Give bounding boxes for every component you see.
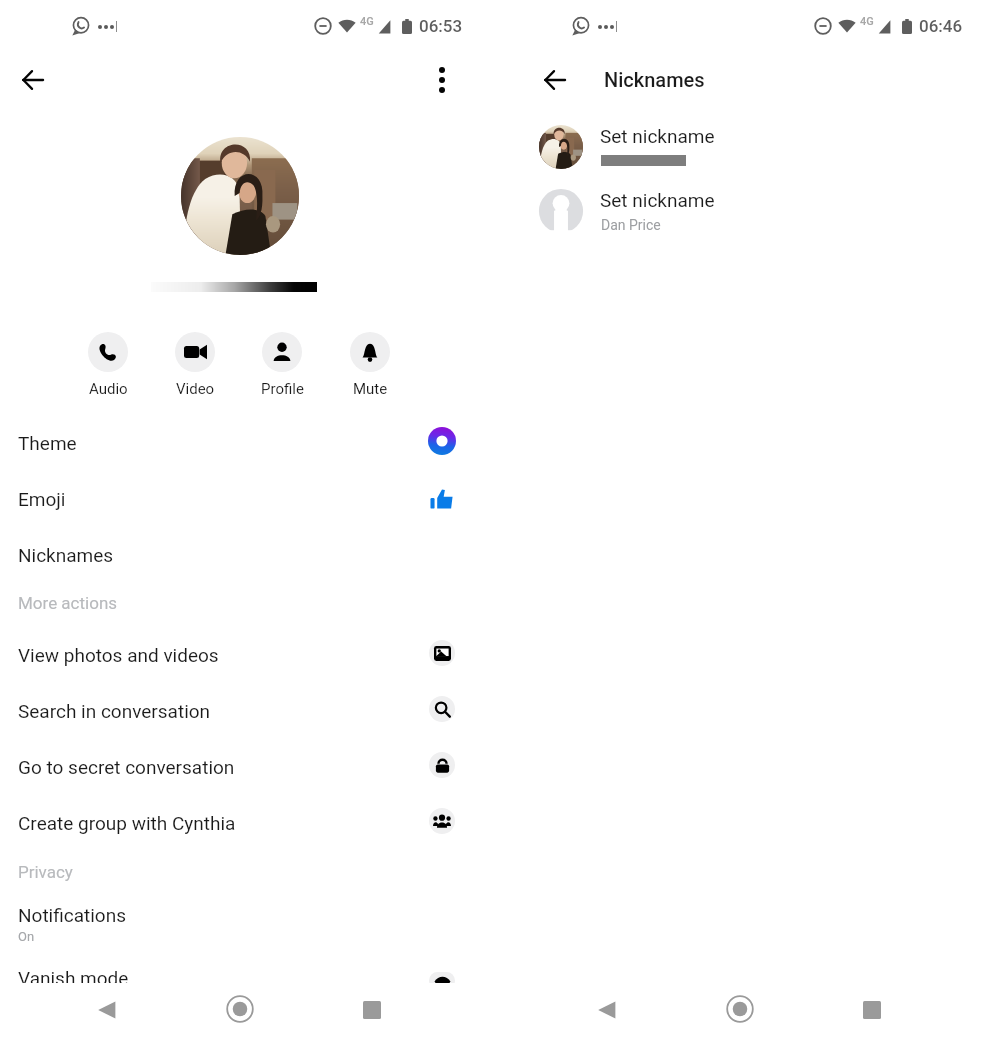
- button[interactable]: Profile: [242, 332, 322, 398]
- button[interactable]: View photos and videos: [0, 631, 500, 687]
- button[interactable]: Back: [596, 1000, 618, 1020]
- staticText: Privacy: [18, 862, 73, 882]
- staticText: View photos and videos: [18, 644, 219, 666]
- staticText: Dan Price: [601, 217, 661, 233]
- button[interactable]: Profile photo: [181, 137, 299, 255]
- button[interactable]: Create group with Cynthia: [0, 799, 500, 855]
- staticText: Mute: [353, 380, 388, 398]
- button[interactable]: Set nickname: [500, 118, 1000, 178]
- button[interactable]: Vanish mode: [0, 966, 500, 983]
- button[interactable]: Back: [96, 1000, 118, 1020]
- staticText: 06:46: [919, 16, 963, 36]
- staticText: On: [18, 929, 35, 944]
- button[interactable]: Go to secret conversation: [0, 743, 500, 799]
- staticText: Notifications: [18, 904, 127, 926]
- button[interactable]: Back: [13, 60, 53, 100]
- staticText: More actions: [18, 593, 118, 613]
- button[interactable]: Home: [226, 995, 254, 1023]
- button[interactable]: Theme: [0, 419, 500, 475]
- button[interactable]: Video: [155, 332, 235, 398]
- button[interactable]: Nicknames: [0, 531, 500, 587]
- staticText: 06:53: [419, 16, 463, 36]
- staticText: Nicknames: [604, 68, 705, 91]
- button[interactable]: Emoji: [0, 475, 500, 531]
- staticText: Vanish mode: [18, 967, 129, 983]
- button[interactable]: More options: [422, 60, 462, 100]
- staticText: Emoji: [18, 488, 66, 510]
- button[interactable]: Search in conversation: [0, 687, 500, 743]
- button[interactable]: Set nickname: [500, 184, 1000, 244]
- staticText: 4G: [860, 15, 874, 28]
- staticText: Search in conversation: [18, 700, 211, 722]
- button[interactable]: Mute: [330, 332, 410, 398]
- staticText: Go to secret conversation: [18, 756, 235, 778]
- button[interactable]: Audio: [68, 332, 148, 398]
- staticText: Create group with Cynthia: [18, 812, 236, 834]
- button[interactable]: Back: [535, 60, 575, 100]
- button[interactable]: Notifications: [0, 898, 500, 958]
- staticText: Set nickname: [600, 189, 715, 211]
- staticText: Video: [176, 380, 215, 398]
- staticText: Nicknames: [18, 544, 114, 566]
- staticText: Audio: [89, 380, 128, 398]
- button[interactable]: Recent apps: [363, 1001, 381, 1019]
- staticText: 4G: [360, 15, 374, 28]
- staticText: Set nickname: [600, 125, 715, 147]
- staticText: Theme: [18, 432, 77, 454]
- button[interactable]: Recent apps: [863, 1001, 881, 1019]
- button[interactable]: Home: [726, 995, 754, 1023]
- staticText: Profile: [261, 380, 304, 398]
